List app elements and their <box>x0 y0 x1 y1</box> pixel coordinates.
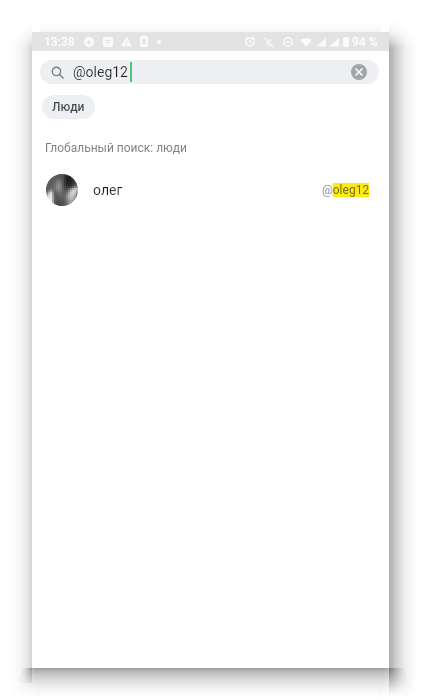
staticText: @oleg12 <box>322 183 370 197</box>
staticText: 13:38 <box>44 35 75 49</box>
button[interactable]: Люди <box>42 95 95 119</box>
staticText: 94 % <box>352 35 378 49</box>
staticText: Люди <box>52 100 85 114</box>
staticText: Глобальный поиск: люди <box>45 141 187 155</box>
button[interactable]: Clear search <box>351 64 367 80</box>
button[interactable]: @oleg12 <box>40 60 379 84</box>
staticText: олег <box>93 182 123 198</box>
button[interactable]: олег <box>32 168 389 212</box>
staticText: @oleg12 <box>73 64 128 80</box>
